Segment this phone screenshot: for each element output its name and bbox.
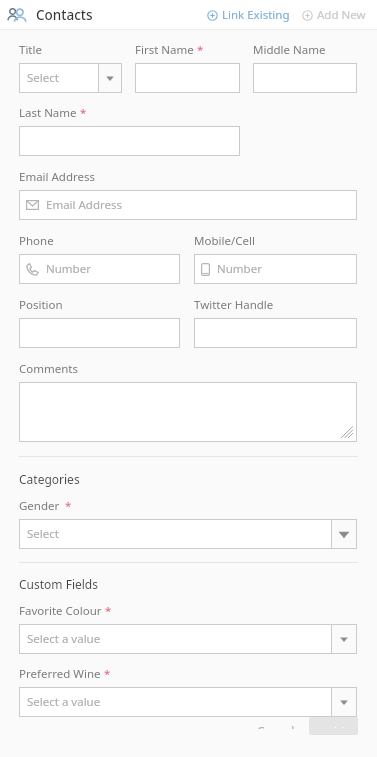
button[interactable]: Position <box>19 318 180 348</box>
staticText: Favorite Colour <box>19 603 102 619</box>
button[interactable]: Email Address <box>19 190 357 220</box>
staticText: Select a value <box>27 631 101 647</box>
staticText: Email Address <box>19 169 96 185</box>
staticText: Position <box>19 297 63 313</box>
staticText: Title <box>19 42 42 58</box>
staticText: Select <box>27 526 59 542</box>
staticText: Add New <box>317 7 366 23</box>
staticText: * <box>105 603 112 619</box>
staticText: * <box>65 498 72 514</box>
staticText: Select a value <box>27 694 101 710</box>
button[interactable]: Link Existing <box>205 4 292 26</box>
button[interactable]: Preferred Wine <box>19 687 357 717</box>
staticText: Custom Fields <box>19 576 98 592</box>
button[interactable]: Phone <box>19 254 180 284</box>
button[interactable]: Cancel <box>249 717 303 735</box>
staticText: Comments <box>19 361 78 377</box>
button[interactable]: Comments <box>19 382 357 442</box>
staticText: Phone <box>19 233 54 249</box>
button[interactable]: Gender <box>19 519 357 549</box>
staticText: Preferred Wine <box>19 666 101 682</box>
staticText: Number <box>217 261 262 277</box>
staticText: Link Existing <box>222 7 290 23</box>
staticText: * <box>104 666 111 682</box>
staticText: First Name <box>135 42 194 58</box>
staticText: * <box>80 105 87 121</box>
staticText: Categories <box>19 471 80 487</box>
staticText: Gender <box>19 498 60 514</box>
staticText: Select <box>27 70 59 86</box>
staticText: Mobile/Cell <box>194 233 255 249</box>
button[interactable]: Favorite Colour <box>19 624 357 654</box>
staticText: Twitter Handle <box>194 297 274 313</box>
button[interactable]: Twitter Handle <box>194 318 357 348</box>
staticText: Add <box>322 724 345 728</box>
staticText: * <box>197 42 204 58</box>
button[interactable]: Last Name <box>19 126 240 156</box>
button[interactable]: Add New <box>300 4 368 26</box>
button[interactable]: Mobile or Cell <box>194 254 357 284</box>
button[interactable]: Contacts module <box>7 8 27 22</box>
staticText: Number <box>46 261 91 277</box>
staticText: Email Address <box>46 197 123 213</box>
button[interactable]: Title <box>19 63 122 93</box>
button[interactable]: Middle Name <box>253 63 357 93</box>
button[interactable]: First Name <box>135 63 240 93</box>
staticText: Cancel <box>257 723 295 729</box>
staticText: Contacts <box>36 6 93 24</box>
staticText: Middle Name <box>253 42 326 58</box>
staticText: Last Name <box>19 105 77 121</box>
